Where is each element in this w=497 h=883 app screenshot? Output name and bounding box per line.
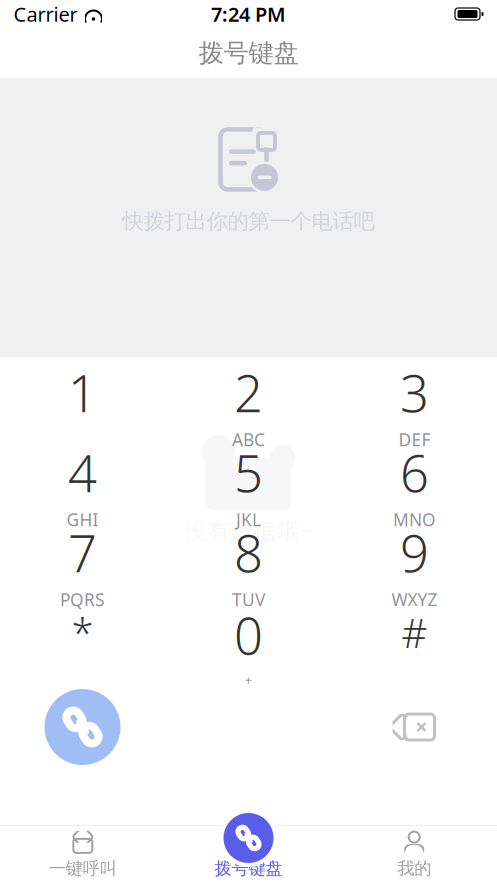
staticText: 我的 bbox=[397, 858, 431, 879]
staticText: 快拨打出你的第一个电话吧 bbox=[122, 208, 374, 235]
staticText: 8 bbox=[234, 519, 263, 586]
staticText: TUV bbox=[232, 588, 265, 611]
button[interactable]: 4 bbox=[0, 445, 165, 525]
staticText: * bbox=[71, 606, 93, 659]
staticText: 5 bbox=[234, 439, 263, 506]
staticText: 3 bbox=[400, 359, 429, 426]
button[interactable]: 8 bbox=[165, 525, 331, 605]
button[interactable]: 拨打电话 bbox=[0, 687, 165, 767]
button[interactable]: 9 bbox=[331, 525, 497, 605]
staticText: 4 bbox=[68, 439, 97, 506]
staticText: 0 bbox=[234, 601, 263, 669]
staticText: DEF bbox=[398, 428, 430, 451]
staticText: ABC bbox=[232, 428, 265, 451]
staticText: 一键呼叫 bbox=[49, 858, 117, 879]
button[interactable]: 1 bbox=[0, 365, 165, 445]
staticText: 9 bbox=[400, 519, 429, 586]
staticText: WXYZ bbox=[391, 588, 437, 611]
button[interactable]: 一键呼叫 bbox=[0, 825, 166, 883]
button[interactable]: 拨号键盘 bbox=[166, 825, 331, 883]
staticText: 1 bbox=[68, 359, 97, 426]
button[interactable]: * bbox=[0, 605, 165, 685]
staticText: 拨号键盘 bbox=[198, 37, 298, 68]
staticText: MNO bbox=[393, 508, 436, 531]
button[interactable]: 3 bbox=[331, 365, 497, 445]
staticText: PQRS bbox=[60, 588, 105, 611]
button[interactable]: 2 bbox=[165, 365, 331, 445]
button[interactable]: 6 bbox=[331, 445, 497, 525]
staticText: 拨号键盘 bbox=[214, 858, 282, 879]
staticText: # bbox=[401, 606, 427, 659]
button[interactable]: 拨号键盘 bbox=[217, 807, 279, 869]
button[interactable]: 5 bbox=[165, 445, 331, 525]
staticText: 没有数据哦~ bbox=[184, 516, 312, 546]
button[interactable]: # bbox=[331, 605, 497, 685]
staticText: 2 bbox=[234, 359, 263, 426]
button[interactable]: 我的 bbox=[331, 825, 497, 883]
staticText: 6 bbox=[400, 439, 429, 506]
staticText: 7 bbox=[68, 519, 97, 586]
staticText: + bbox=[244, 671, 252, 688]
staticText: 7:24 PM bbox=[211, 1, 286, 27]
button[interactable]: 7 bbox=[0, 525, 165, 605]
button[interactable]: 0 bbox=[165, 605, 331, 685]
staticText: GHI bbox=[66, 508, 98, 531]
button[interactable]: 删除 bbox=[331, 687, 497, 767]
staticText: Carrier bbox=[13, 1, 77, 27]
staticText: JKL bbox=[236, 508, 261, 531]
